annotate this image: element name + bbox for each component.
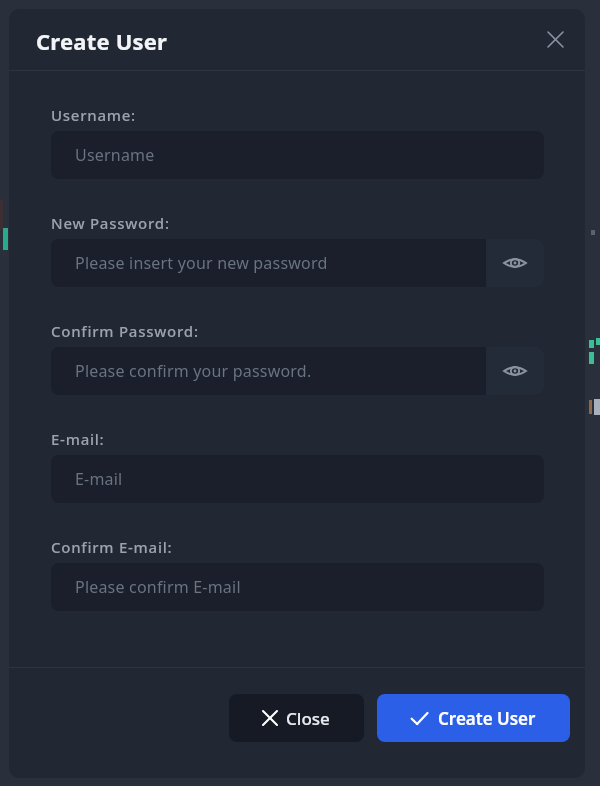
button[interactable]: Close xyxy=(229,694,364,742)
staticText: New Password: xyxy=(51,213,170,233)
button[interactable]: Show new password xyxy=(486,239,544,287)
button[interactable]: Show confirm password xyxy=(486,347,544,395)
staticText: Create User xyxy=(438,707,536,730)
staticText: Please confirm your password. xyxy=(75,360,312,382)
button[interactable]: Create User xyxy=(377,694,570,742)
staticText: E-mail xyxy=(75,468,123,490)
staticText: Please insert your new password xyxy=(75,252,328,274)
button[interactable]: Please confirm E-mail xyxy=(51,563,544,611)
button[interactable]: E-mail xyxy=(51,455,544,503)
staticText: Confirm E-mail: xyxy=(51,537,173,557)
button[interactable]: Please confirm your password. xyxy=(51,347,544,395)
button[interactable]: Username xyxy=(51,131,544,179)
button[interactable]: Please insert your new password xyxy=(51,239,544,287)
staticText: Username: xyxy=(51,105,136,125)
staticText: Close xyxy=(286,707,330,730)
staticText: E-mail: xyxy=(51,429,105,449)
staticText: Please confirm E-mail xyxy=(75,576,241,598)
staticText: Confirm Password: xyxy=(51,321,199,341)
staticText: Create User xyxy=(36,26,168,56)
staticText: Username xyxy=(75,144,155,166)
button[interactable]: Close dialog xyxy=(536,20,574,58)
